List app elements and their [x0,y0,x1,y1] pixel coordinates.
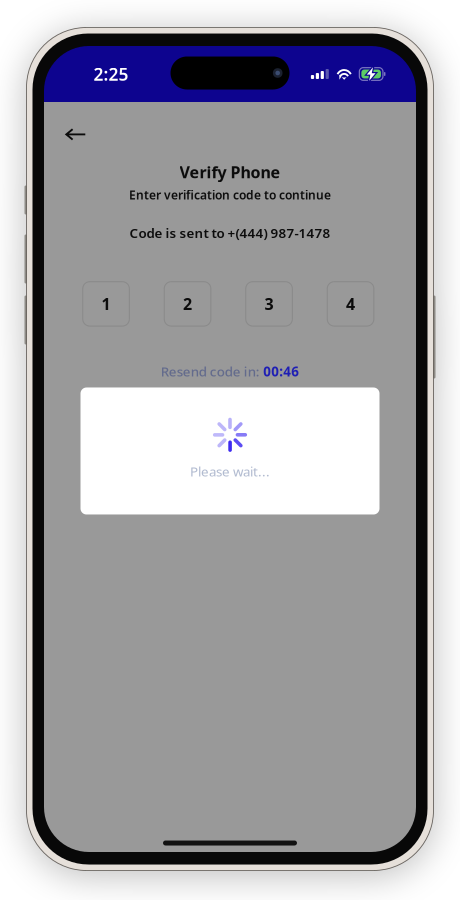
button[interactable]: Back [44,116,102,152]
staticText: 1 [101,293,110,314]
staticText: Enter verification code to continue [129,187,331,203]
button[interactable]: 4 [327,282,374,326]
button[interactable]: 3 [246,282,292,326]
staticText: 2:25 [93,62,128,85]
staticText: Please wait... [190,462,270,480]
staticText: 00:46 [263,362,299,380]
staticText: 4 [346,293,355,314]
staticText: 3 [265,293,274,314]
staticText: Code is sent to +(444) 987-1478 [129,224,330,242]
staticText: Resend code in: [161,362,260,380]
button[interactable]: 1 [83,282,129,326]
staticText: Verify Phone [179,161,280,182]
staticText: 2 [183,293,192,314]
button[interactable]: 2 [164,282,211,326]
